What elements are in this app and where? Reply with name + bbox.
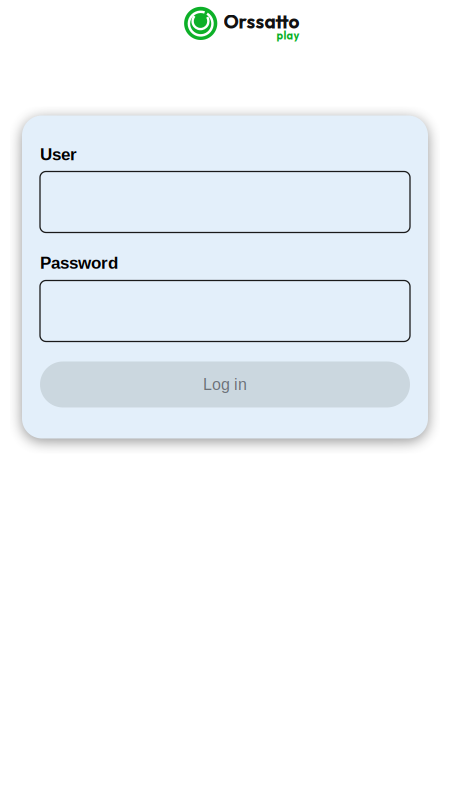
staticText: Log in bbox=[203, 375, 247, 393]
staticText: Password bbox=[40, 253, 118, 272]
staticText: Orssatto bbox=[223, 10, 299, 33]
button[interactable]: Log in bbox=[40, 361, 410, 407]
staticText: User bbox=[40, 145, 77, 164]
staticText: play bbox=[276, 28, 299, 42]
